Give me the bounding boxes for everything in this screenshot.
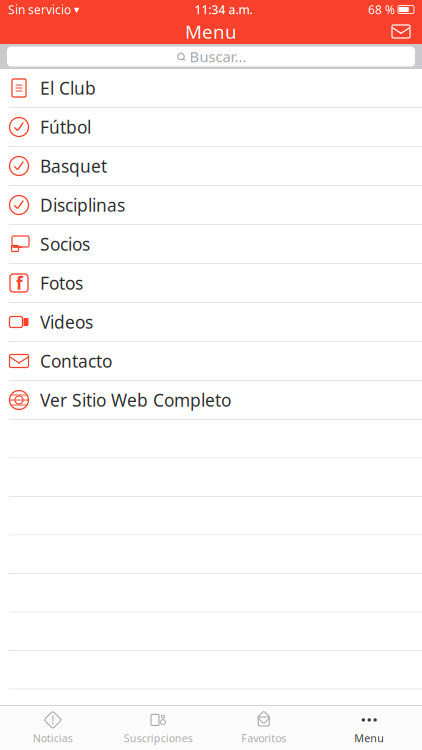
staticText: ▾ [71, 3, 79, 15]
button[interactable]: Buscar... [7, 46, 415, 66]
staticText: Disciplinas [40, 193, 125, 216]
button[interactable]: Mensajes [386, 18, 416, 44]
button[interactable]: Ver Sitio Web Completo [0, 381, 422, 420]
button[interactable]: Menu [316, 707, 422, 749]
button[interactable]: Favoritos [211, 707, 316, 749]
staticText: Basquet [40, 154, 107, 177]
staticText: Fútbol [40, 115, 91, 138]
staticText: f [16, 271, 23, 294]
staticText: Socios [40, 232, 90, 255]
staticText: Suscripciones [124, 731, 193, 745]
staticText: Fotos [40, 271, 83, 294]
staticText: Menu [185, 19, 237, 44]
button[interactable]: Contacto [0, 342, 422, 381]
staticText: Contacto [40, 349, 112, 372]
button[interactable]: El Club [0, 69, 422, 108]
staticText: Favoritos [241, 731, 286, 745]
staticText: Buscar... [189, 47, 246, 66]
staticText: Sin servicio [8, 1, 71, 17]
staticText: Menu [354, 731, 384, 745]
button[interactable]: Videos [0, 303, 422, 342]
button[interactable]: Disciplinas [0, 186, 422, 225]
staticText: Ver Sitio Web Completo [40, 388, 231, 411]
button[interactable]: Fútbol [0, 108, 422, 147]
staticText: 68 % [368, 1, 395, 17]
button[interactable]: ! [0, 707, 105, 749]
button[interactable]: Suscripciones [105, 707, 211, 749]
staticText: El Club [40, 76, 96, 99]
staticText: ! [51, 712, 54, 728]
staticText: Videos [40, 310, 93, 333]
button[interactable]: f [0, 264, 422, 303]
staticText: Noticias [33, 731, 73, 745]
button[interactable]: Basquet [0, 147, 422, 186]
button[interactable]: Socios [0, 225, 422, 264]
staticText: 11:34 a.m. [194, 1, 252, 17]
